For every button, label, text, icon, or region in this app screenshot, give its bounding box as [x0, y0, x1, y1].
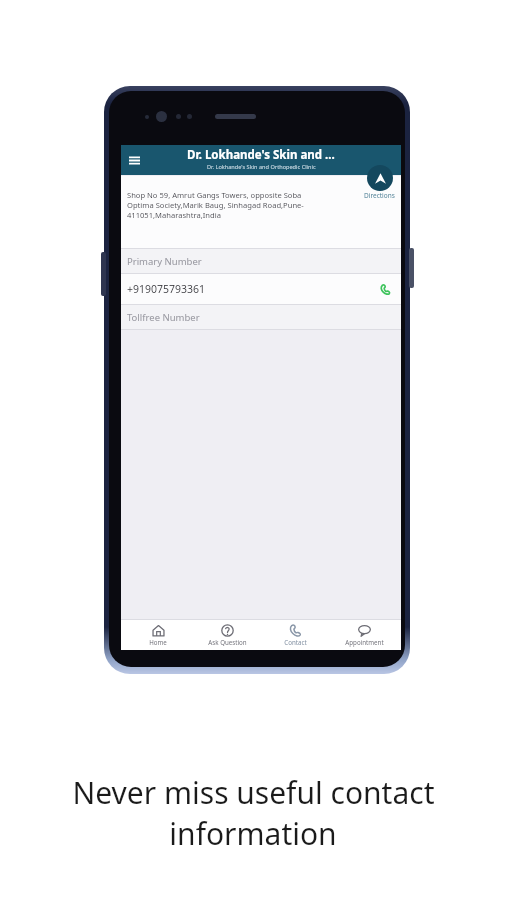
- staticText: Shop No 59, Amrut Gangs Towers, opposite…: [127, 190, 302, 200]
- staticText: information: [169, 813, 337, 854]
- button[interactable]: Appointment: [332, 622, 396, 648]
- staticText: Primary Number: [127, 255, 202, 268]
- staticText: Home: [149, 638, 167, 646]
- staticText: Dr. Lokhande's Skin and Orthopedic Clini…: [207, 163, 316, 171]
- staticText: Never miss useful contact: [72, 772, 435, 813]
- staticText: Optima Society,Marik Baug, Sinhagad Road…: [127, 200, 304, 210]
- staticText: Contact: [284, 638, 307, 646]
- staticText: Tollfree Number: [127, 311, 200, 324]
- button[interactable]: +919075793361: [121, 274, 401, 304]
- button[interactable]: Contact: [263, 622, 327, 648]
- staticText: Appointment: [345, 638, 384, 646]
- button[interactable]: Menu: [124, 150, 144, 170]
- staticText: Dr. Lokhande's Skin and ...: [187, 147, 335, 163]
- button[interactable]: Directions: [364, 165, 395, 200]
- button[interactable]: Home: [126, 622, 190, 648]
- staticText: 411051,Maharashtra,India: [127, 210, 221, 220]
- staticText: Directions: [364, 191, 395, 200]
- button[interactable]: Ask Question: [195, 622, 259, 648]
- staticText: +919075793361: [127, 282, 206, 296]
- staticText: Ask Question: [208, 638, 247, 646]
